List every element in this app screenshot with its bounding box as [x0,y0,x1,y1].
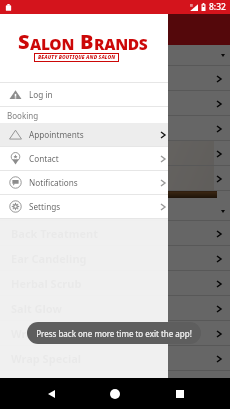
button[interactable]: Gel Polish [0,45,230,66]
staticText: S [18,28,30,55]
button[interactable]: Back [40,383,62,405]
button[interactable]: Log in [0,83,168,106]
staticText: Massage [11,205,51,217]
staticText: BEAUTY BOUTIQUE AND SALON [38,54,116,61]
staticText: Gel Removal [11,171,79,186]
button[interactable]: Recent apps [169,383,191,405]
button[interactable]: Back Treatment [0,221,230,246]
button[interactable]: Ear Candeling [0,246,230,271]
button[interactable]: Home [104,383,126,405]
button[interactable]: Appointments [0,123,168,146]
button[interactable]: Nail Art [0,91,230,116]
button[interactable]: Wrap Special [0,346,230,371]
staticText: Manicure [11,121,63,136]
staticText: Nail Art [11,96,54,111]
staticText: Settings [29,201,61,212]
button[interactable]: Notifications [0,171,168,194]
staticText: RANDS [94,33,148,54]
button[interactable]: Herbal Scrub [0,271,230,296]
staticText: Notifications [29,177,78,188]
button[interactable]: Salt Glow [0,296,230,321]
button[interactable]: Gel Removal [0,166,230,191]
staticText: B [80,28,94,55]
staticText: Booking [7,110,39,121]
staticText: ALON [30,33,75,54]
staticText: Press back one more time to exit the app… [36,328,192,339]
button[interactable]: Gel Polish Add On [0,66,230,91]
staticText: Gel Polish Add On [11,71,108,86]
staticText: Appointments [29,129,84,140]
staticText: Contact [29,153,59,164]
button[interactable]: Massage [0,201,230,221]
button[interactable]: Manicure [0,116,230,141]
staticText: Gel Polish [11,50,55,62]
staticText: 8:32 [209,1,226,13]
button[interactable]: Wrap [0,321,230,346]
staticText: Log in [29,89,53,100]
staticText: Wrap [11,326,40,341]
button[interactable]: Contact [0,147,168,170]
staticText: Pedicure [11,146,59,161]
button[interactable]: Settings [0,195,168,218]
button[interactable]: Pedicure [0,141,230,166]
